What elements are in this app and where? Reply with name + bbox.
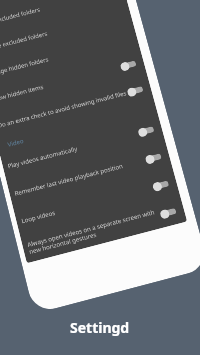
staticText: Play videos automatically — [7, 129, 139, 170]
staticText: Settingd — [70, 318, 130, 337]
staticText: Always open videos on a separate screen … — [27, 207, 162, 256]
button[interactable]: Remember last video playback position — [6, 140, 172, 209]
staticText: Do an extra check to avoid showing inval… — [0, 89, 128, 130]
staticText: Show hidden items — [0, 63, 122, 104]
button[interactable]: Manage included folders — [0, 0, 127, 40]
staticText: Video — [7, 137, 25, 149]
button[interactable]: Always open videos on a separate screen … — [20, 195, 187, 263]
button[interactable]: Loop videos — [13, 168, 180, 236]
staticText: Remember last video playback position — [14, 156, 147, 198]
button[interactable]: Do an extra check to avoid showing inval… — [0, 74, 154, 141]
staticText: Manage included folders — [0, 0, 117, 30]
staticText: Manage hidden folders — [0, 35, 130, 79]
button[interactable]: Show hidden items — [0, 49, 147, 114]
button[interactable]: Manage hidden folders — [0, 25, 140, 89]
staticText: Manage excluded folders — [0, 11, 124, 54]
button[interactable]: Play videos automatically — [0, 114, 165, 181]
button[interactable]: Manage excluded folders — [0, 0, 133, 64]
staticText: Loop videos — [21, 183, 154, 225]
